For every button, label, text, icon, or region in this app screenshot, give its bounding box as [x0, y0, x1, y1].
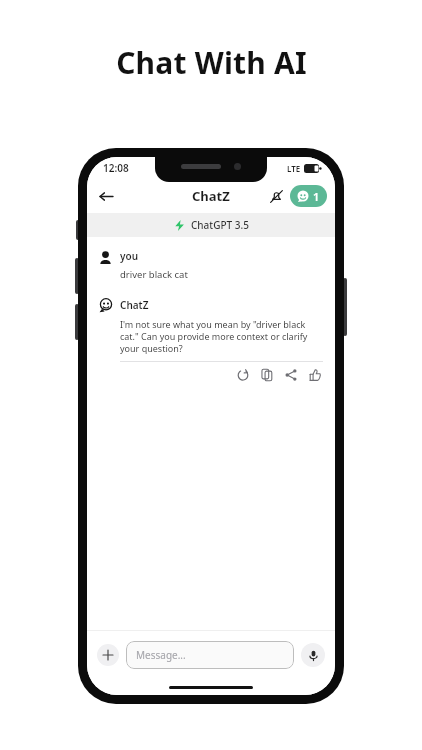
button[interactable]: you: [87, 247, 335, 283]
button[interactable]: Message...: [126, 641, 294, 669]
staticText: ChatZ: [120, 298, 149, 312]
button[interactable]: Share: [282, 366, 299, 383]
button[interactable]: ChatGPT 3.5: [87, 213, 335, 237]
button[interactable]: Mute notifications: [264, 184, 288, 208]
button[interactable]: Regenerate: [234, 366, 251, 383]
staticText: 1: [313, 189, 320, 204]
button[interactable]: Voice input: [301, 643, 325, 667]
staticText: LTE: [287, 163, 301, 174]
staticText: ChatZ: [192, 187, 230, 205]
staticText: 12:08: [103, 161, 129, 175]
button[interactable]: Copy: [258, 366, 275, 383]
button[interactable]: Like: [306, 366, 323, 383]
button[interactable]: Add attachment: [97, 644, 119, 666]
staticText: Message...: [136, 648, 186, 662]
staticText: you: [120, 249, 139, 263]
staticText: driver black cat: [120, 268, 188, 281]
button[interactable]: ChatZ: [87, 297, 335, 383]
button[interactable]: Back: [93, 183, 119, 209]
staticText: ChatGPT 3.5: [191, 218, 249, 232]
staticText: Chat With AI: [116, 42, 307, 83]
staticText: I'm not sure what you mean by "driver bl…: [120, 318, 308, 354]
button[interactable]: 1: [290, 185, 327, 207]
